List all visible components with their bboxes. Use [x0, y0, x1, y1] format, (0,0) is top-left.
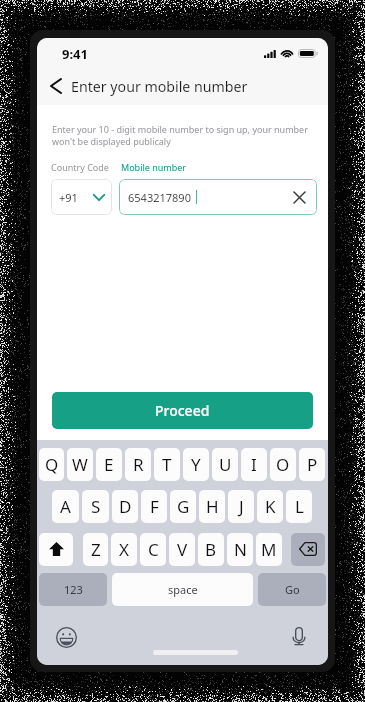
staticText: F	[150, 495, 159, 518]
staticText: X	[119, 538, 129, 561]
button[interactable]: space	[112, 573, 253, 606]
staticText: E	[104, 453, 114, 476]
staticText: +91	[59, 190, 78, 205]
button[interactable]: Clear	[291, 189, 307, 205]
staticText: J	[239, 495, 244, 518]
staticText: 6543217890	[128, 190, 191, 205]
button[interactable]: T	[154, 448, 180, 481]
staticText: Go	[285, 582, 300, 597]
button[interactable]: C	[140, 533, 166, 566]
button[interactable]: Proceed	[52, 392, 313, 429]
staticText: space	[168, 582, 198, 597]
button[interactable]: M	[256, 533, 282, 566]
staticText: L	[295, 495, 304, 518]
button[interactable]: J	[228, 490, 254, 523]
button[interactable]: V	[169, 533, 195, 566]
button[interactable]: X	[111, 533, 137, 566]
button[interactable]: E	[96, 448, 122, 481]
staticText: B	[205, 538, 217, 561]
staticText: P	[307, 453, 318, 476]
staticText: U	[219, 453, 232, 476]
staticText: T	[162, 453, 172, 476]
button[interactable]: +91	[51, 179, 112, 215]
staticText: 9:41	[62, 45, 88, 63]
staticText: Q	[45, 453, 59, 476]
button[interactable]: Backspace	[291, 533, 325, 566]
button[interactable]: K	[257, 490, 283, 523]
staticText: N	[234, 538, 247, 561]
button[interactable]: Q	[39, 448, 64, 481]
staticText: Mobile number	[121, 161, 187, 173]
staticText: S	[91, 495, 101, 518]
button[interactable]: B	[198, 533, 224, 566]
button[interactable]: Emoji	[55, 626, 77, 648]
button[interactable]: N	[227, 533, 253, 566]
staticText: C	[148, 538, 159, 561]
button[interactable]: Y	[183, 448, 209, 481]
staticText: 123	[64, 582, 83, 597]
staticText: Country Code	[51, 161, 109, 173]
staticText: O	[276, 453, 290, 476]
staticText: K	[265, 495, 276, 518]
staticText: G	[177, 495, 190, 518]
button[interactable]: A	[52, 490, 79, 523]
button[interactable]: G	[170, 490, 196, 523]
staticText: Z	[91, 538, 101, 561]
staticText: Proceed	[155, 401, 210, 420]
button[interactable]: H	[199, 490, 225, 523]
staticText: I	[251, 453, 257, 476]
staticText: Enter your 10 - digit mobile number to s…	[52, 123, 314, 148]
staticText: D	[119, 495, 132, 518]
button[interactable]: S	[82, 490, 109, 523]
staticText: Y	[191, 453, 201, 476]
staticText: A	[60, 495, 71, 518]
button[interactable]: R	[125, 448, 151, 481]
button[interactable]: Shift	[39, 533, 73, 566]
staticText: W	[72, 453, 88, 476]
button[interactable]: P	[299, 448, 325, 481]
button[interactable]: W	[67, 448, 93, 481]
staticText: V	[177, 538, 188, 561]
staticText: R	[133, 453, 144, 476]
button[interactable]: Z	[83, 533, 108, 566]
button[interactable]: Go	[258, 573, 326, 606]
button[interactable]: 6543217890	[119, 179, 317, 215]
staticText: H	[206, 495, 219, 518]
button[interactable]: I	[241, 448, 267, 481]
button[interactable]: 123	[39, 573, 107, 606]
button[interactable]: F	[141, 490, 167, 523]
button[interactable]: O	[270, 448, 296, 481]
button[interactable]: D	[112, 490, 138, 523]
button[interactable]: Back	[37, 70, 71, 102]
button[interactable]: Voice input	[287, 624, 311, 648]
staticText: Enter your mobile number	[71, 77, 248, 96]
staticText: M	[261, 538, 277, 561]
button[interactable]: U	[212, 448, 238, 481]
button[interactable]: L	[286, 490, 312, 523]
